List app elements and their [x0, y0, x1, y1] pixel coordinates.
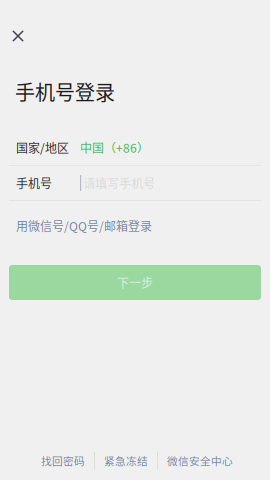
button[interactable]: 紧急冻结 — [95, 449, 157, 472]
button[interactable]: 手机号 — [0, 166, 270, 200]
button[interactable]: 下一步 — [0, 265, 270, 300]
staticText: 国家/地区 — [16, 139, 69, 156]
button[interactable]: 用微信号/QQ号/邮箱登录 — [0, 213, 168, 238]
staticText: 手机号 — [16, 174, 52, 192]
staticText: 用微信号/QQ号/邮箱登录 — [16, 217, 152, 234]
staticText: 微信安全中心 — [167, 453, 233, 468]
staticText: 紧急冻结 — [104, 453, 148, 468]
staticText: 下一步 — [117, 274, 153, 291]
button[interactable]: Close — [0, 21, 36, 51]
button[interactable]: 国家/地区 — [0, 130, 270, 165]
staticText: 找回密码 — [41, 453, 85, 468]
button[interactable]: 找回密码 — [32, 449, 94, 472]
staticText: 中国（+86） — [80, 139, 149, 156]
staticText: 请填写手机号 — [83, 174, 155, 192]
staticText: 手机号登录 — [15, 77, 115, 106]
button[interactable]: 微信安全中心 — [158, 449, 242, 472]
